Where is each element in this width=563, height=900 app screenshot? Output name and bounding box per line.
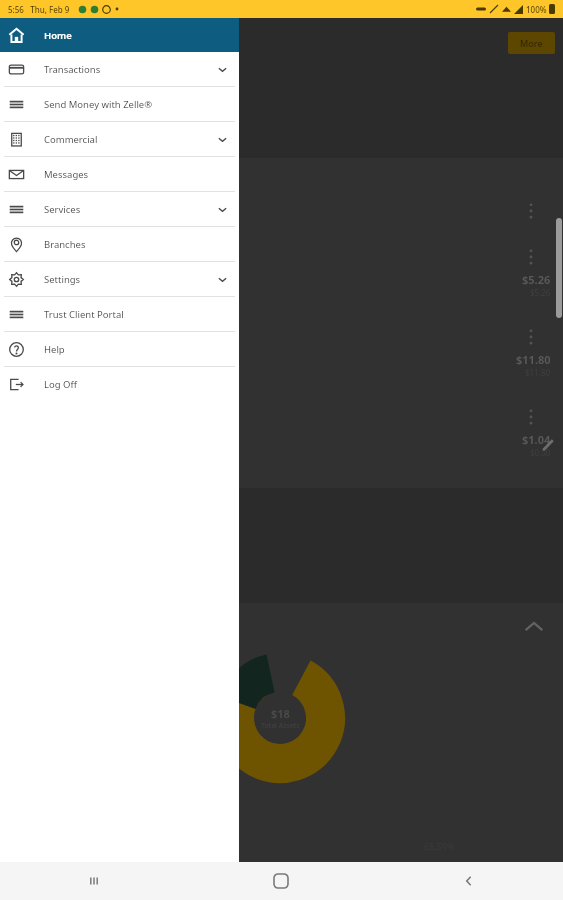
other: Account options bbox=[524, 406, 538, 428]
staticText: 100% bbox=[526, 4, 547, 15]
staticText: Messages bbox=[44, 168, 89, 181]
staticText: Send Money with Zelle® bbox=[44, 98, 153, 111]
staticText: Home bbox=[44, 29, 72, 42]
staticText: $0.00 bbox=[530, 447, 551, 458]
button[interactable]: Trust Client Portal bbox=[0, 297, 239, 331]
button[interactable]: Help bbox=[0, 332, 239, 366]
staticText: $5.26 bbox=[522, 272, 551, 287]
other: Account options bbox=[524, 326, 538, 348]
staticText: Trust Client Portal bbox=[44, 308, 124, 321]
staticText: Branches bbox=[44, 238, 86, 251]
staticText: $11.80 bbox=[525, 367, 551, 378]
staticText: Settings bbox=[44, 273, 81, 286]
button[interactable]: Transactions bbox=[0, 52, 239, 86]
button[interactable]: Home bbox=[187, 862, 375, 900]
button[interactable]: Home bbox=[0, 18, 239, 52]
staticText: $18 bbox=[271, 706, 290, 721]
button[interactable]: Branches bbox=[0, 227, 239, 261]
staticText: Commercial bbox=[44, 133, 98, 146]
button[interactable]: Send Money with Zelle® bbox=[0, 87, 239, 121]
staticText: Total Assets bbox=[261, 721, 300, 731]
button[interactable]: Settings bbox=[0, 262, 239, 296]
button[interactable]: Back bbox=[375, 862, 563, 900]
staticText: 5:56 Thu, Feb 9 bbox=[8, 4, 70, 15]
staticText: $5.26 bbox=[530, 287, 551, 298]
staticText: $1.04 bbox=[522, 432, 551, 447]
staticText: $11.80 bbox=[516, 352, 551, 367]
other: Collapse bbox=[521, 614, 547, 640]
button[interactable]: Messages bbox=[0, 157, 239, 191]
staticText: Log Off bbox=[44, 378, 77, 391]
button[interactable]: Services bbox=[0, 192, 239, 226]
staticText: Southwest bbox=[20, 34, 158, 69]
staticText: Transactions bbox=[44, 63, 101, 76]
other: Edit bbox=[540, 438, 556, 454]
staticText: Securities Bank bbox=[60, 58, 111, 68]
staticText: More bbox=[520, 37, 543, 49]
button[interactable]: Commercial bbox=[0, 122, 239, 156]
staticText: Services bbox=[44, 203, 81, 216]
other: Account options bbox=[524, 246, 538, 268]
button[interactable]: Log Off bbox=[0, 367, 239, 401]
staticText: Help bbox=[44, 343, 65, 356]
staticText: r finances. bbox=[4, 124, 53, 138]
button[interactable]: Recents bbox=[0, 862, 187, 900]
other: Account options bbox=[524, 200, 538, 222]
button[interactable]: More bbox=[508, 32, 555, 54]
